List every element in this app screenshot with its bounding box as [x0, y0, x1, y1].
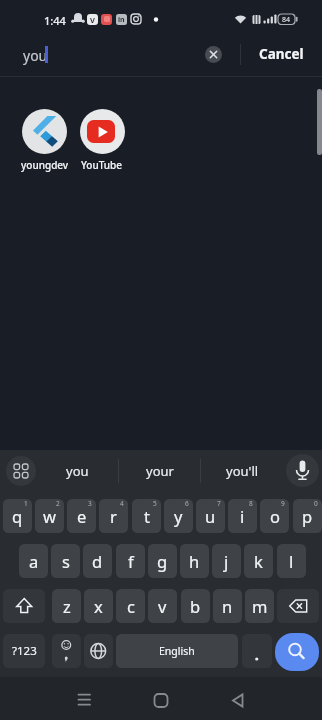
button[interactable]: p: [293, 499, 322, 533]
staticText: o: [270, 505, 280, 527]
button[interactable]: g: [148, 544, 177, 578]
staticText: b: [190, 595, 201, 617]
button[interactable]: you'll: [214, 461, 270, 481]
staticText: y: [174, 505, 183, 527]
staticText: you'll: [226, 462, 259, 480]
button[interactable]: j: [212, 544, 241, 578]
button[interactable]: [242, 634, 272, 668]
button[interactable]: z: [52, 589, 81, 623]
button[interactable]: v: [148, 589, 177, 623]
staticText: V: [90, 15, 95, 25]
staticText: j: [224, 550, 229, 572]
staticText: i: [240, 505, 245, 527]
staticText: 1:44: [44, 13, 66, 26]
staticText: l: [289, 550, 294, 572]
button[interactable]: [6, 456, 36, 486]
staticText: ?123: [12, 643, 37, 659]
button[interactable]: d: [83, 544, 112, 578]
button[interactable]: q: [3, 499, 32, 533]
button[interactable]: f: [116, 544, 145, 578]
button[interactable]: t: [132, 499, 161, 533]
button[interactable]: [80, 109, 125, 154]
staticText: 0: [314, 499, 318, 508]
staticText: s: [62, 550, 70, 572]
staticText: z: [63, 595, 71, 617]
staticText: h: [189, 550, 200, 572]
staticText: Cancel: [259, 45, 304, 63]
button[interactable]: e: [67, 499, 96, 533]
staticText: 5: [153, 499, 157, 508]
button[interactable]: r: [99, 499, 128, 533]
button[interactable]: [205, 46, 222, 63]
button[interactable]: ?123: [3, 634, 45, 668]
button[interactable]: l: [277, 544, 306, 578]
staticText: f: [128, 550, 134, 572]
staticText: 9: [281, 499, 285, 508]
button[interactable]: [224, 688, 252, 713]
button[interactable]: o: [260, 499, 289, 533]
button[interactable]: [147, 688, 175, 713]
button[interactable]: your: [132, 461, 188, 481]
staticText: 84: [282, 15, 291, 25]
button[interactable]: x: [84, 589, 113, 623]
button[interactable]: [22, 109, 67, 154]
staticText: you: [23, 46, 48, 65]
staticText: YouTube: [81, 158, 123, 172]
button[interactable]: i: [228, 499, 257, 533]
button[interactable]: [3, 589, 45, 623]
staticText: 6: [185, 499, 189, 508]
button[interactable]: [286, 454, 319, 487]
staticText: c: [127, 595, 135, 617]
staticText: English: [159, 644, 195, 658]
button[interactable]: m: [245, 589, 274, 623]
button[interactable]: n: [213, 589, 242, 623]
staticText: in: [118, 15, 125, 25]
staticText: m: [252, 595, 268, 617]
staticText: youngdev: [21, 158, 69, 172]
button[interactable]: you: [49, 461, 105, 481]
staticText: you: [66, 462, 89, 480]
staticText: k: [254, 550, 263, 572]
staticText: d: [92, 550, 103, 572]
staticText: a: [29, 550, 39, 572]
button[interactable]: [275, 633, 319, 671]
button[interactable]: u: [196, 499, 225, 533]
staticText: u: [205, 505, 216, 527]
button[interactable]: y: [164, 499, 193, 533]
button[interactable]: [84, 634, 113, 668]
staticText: q: [12, 505, 23, 527]
button[interactable]: a: [19, 544, 48, 578]
staticText: 3: [88, 499, 92, 508]
staticText: p: [302, 505, 313, 527]
staticText: your: [146, 462, 174, 480]
staticText: 4: [120, 499, 124, 508]
staticText: t: [144, 505, 150, 527]
button[interactable]: b: [181, 589, 210, 623]
staticText: 1: [24, 499, 28, 508]
button[interactable]: h: [180, 544, 209, 578]
button[interactable]: [277, 589, 319, 623]
button[interactable]: s: [51, 544, 80, 578]
button[interactable]: c: [116, 589, 145, 623]
staticText: 7: [217, 499, 221, 508]
staticText: x: [94, 595, 103, 617]
staticText: 8: [249, 499, 253, 508]
staticText: 2: [56, 499, 60, 508]
button[interactable]: Cancel: [255, 44, 307, 64]
staticText: w: [43, 505, 56, 527]
button[interactable]: [52, 634, 81, 668]
staticText: n: [222, 595, 233, 617]
staticText: r: [110, 505, 117, 527]
staticText: e: [77, 505, 87, 527]
button[interactable]: [70, 688, 98, 713]
button[interactable]: English: [116, 634, 238, 668]
staticText: g: [157, 550, 168, 572]
button[interactable]: k: [244, 544, 273, 578]
staticText: v: [158, 595, 167, 617]
button[interactable]: w: [35, 499, 64, 533]
